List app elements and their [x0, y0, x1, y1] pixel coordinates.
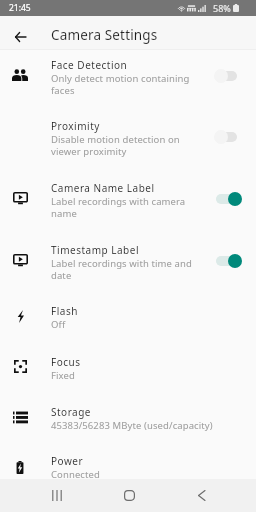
staticText: 21:45: [9, 2, 31, 14]
staticText: Label recordings with camera name: [51, 195, 196, 220]
staticText: 58%: [213, 2, 231, 14]
staticText: Focus: [51, 355, 81, 369]
staticText: Timestamp Label: [51, 243, 139, 257]
button[interactable]: Face Detection: [0, 50, 256, 111]
button[interactable]: Home: [113, 479, 145, 511]
staticText: Disable motion detection on viewer proxi…: [51, 133, 196, 158]
button[interactable]: Timestamp Label: [0, 235, 256, 296]
staticText: Connected: [51, 468, 100, 479]
button[interactable]: Focus: [0, 347, 256, 397]
staticText: Power: [51, 454, 84, 468]
staticText: Proximity: [51, 119, 100, 133]
staticText: Camera Settings: [51, 26, 158, 44]
button[interactable]: Toggle off: [211, 66, 243, 86]
button[interactable]: Camera Name Label: [0, 173, 256, 235]
staticText: Label recordings with time and date: [51, 257, 196, 282]
button[interactable]: Power: [0, 446, 256, 479]
button[interactable]: Proximity: [0, 111, 256, 173]
button[interactable]: Recent apps: [41, 479, 73, 511]
staticText: Face Detection: [51, 58, 128, 72]
staticText: Off: [51, 318, 66, 331]
button[interactable]: Back: [5, 21, 36, 52]
button[interactable]: Back: [185, 479, 217, 511]
button[interactable]: Toggle on: [211, 189, 243, 209]
button[interactable]: Storage: [0, 397, 256, 446]
button[interactable]: Flash: [0, 296, 256, 347]
staticText: Camera Name Label: [51, 181, 155, 195]
button[interactable]: Toggle on: [211, 251, 243, 271]
button[interactable]: Toggle off: [211, 127, 243, 147]
staticText: Storage: [51, 405, 91, 419]
staticText: Fixed: [51, 369, 75, 382]
staticText: Flash: [51, 304, 78, 318]
staticText: Only detect motion containing faces: [51, 72, 196, 97]
staticText: 45383/56283 MByte (used/capacity): [51, 419, 213, 432]
